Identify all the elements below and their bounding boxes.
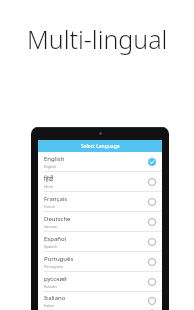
staticText: Italian: [44, 303, 55, 308]
staticText: हिंदी: [44, 175, 54, 183]
button[interactable]: русский: [38, 272, 162, 292]
staticText: Português: [44, 255, 74, 263]
staticText: German: [44, 224, 58, 229]
staticText: French: [44, 204, 56, 209]
staticText: Español: [44, 235, 67, 243]
staticText: Select Language: [81, 143, 120, 150]
other: Select Hindi: [148, 178, 156, 186]
staticText: русский: [44, 275, 67, 283]
button[interactable]: Italiano: [38, 292, 162, 310]
button[interactable]: Português: [38, 252, 162, 272]
staticText: Deutsche: [44, 215, 71, 223]
other: Select Italian: [148, 297, 156, 305]
other: Select German: [148, 218, 156, 226]
other: Select Portuguese: [148, 258, 156, 266]
staticText: Portuguese: [44, 264, 64, 269]
staticText: Français: [44, 195, 68, 203]
staticText: Russian: [44, 284, 57, 289]
button[interactable]: English: [38, 152, 162, 172]
staticText: Italiano: [44, 294, 66, 302]
button[interactable]: हिंदी: [38, 172, 162, 192]
staticText: Spanish: [44, 244, 57, 249]
button[interactable]: Français: [38, 192, 162, 212]
button[interactable]: Deutsche: [38, 212, 162, 232]
staticText: English: [44, 155, 65, 163]
staticText: Multi-lingual: [27, 22, 168, 56]
other: Select French: [148, 198, 156, 206]
other: Selected: [148, 158, 156, 166]
other: Select Spanish: [148, 238, 156, 246]
button[interactable]: Español: [38, 232, 162, 252]
staticText: Hindi: [44, 184, 53, 189]
staticText: English: [44, 164, 56, 169]
other: Select Russian: [148, 278, 156, 286]
